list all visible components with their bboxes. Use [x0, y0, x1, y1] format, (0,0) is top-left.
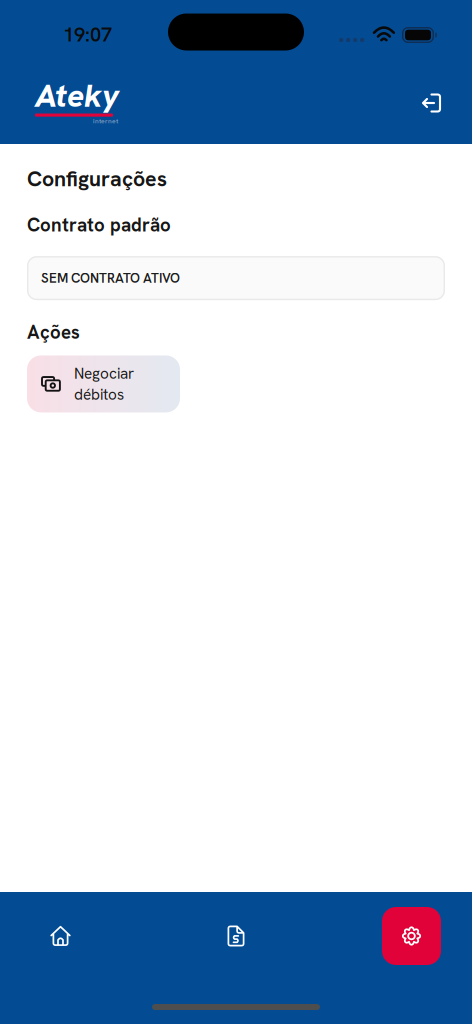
- staticText: 19:07: [63, 21, 112, 48]
- staticText: internet: [93, 117, 118, 125]
- button[interactable]: Configurações: [382, 907, 441, 965]
- staticText: SEM CONTRATO ATIVO: [41, 269, 180, 287]
- button[interactable]: Negociar: [27, 355, 180, 412]
- staticText: débitos: [74, 384, 124, 404]
- staticText: Contrato padrão: [27, 213, 171, 237]
- button[interactable]: Sair: [410, 81, 454, 125]
- staticText: Configurações: [27, 165, 167, 193]
- staticText: Ações: [27, 320, 80, 344]
- button[interactable]: Faturas: [206, 907, 265, 965]
- staticText: Ateky: [35, 75, 119, 116]
- button[interactable]: Início: [31, 907, 90, 965]
- staticText: Negociar: [74, 363, 134, 383]
